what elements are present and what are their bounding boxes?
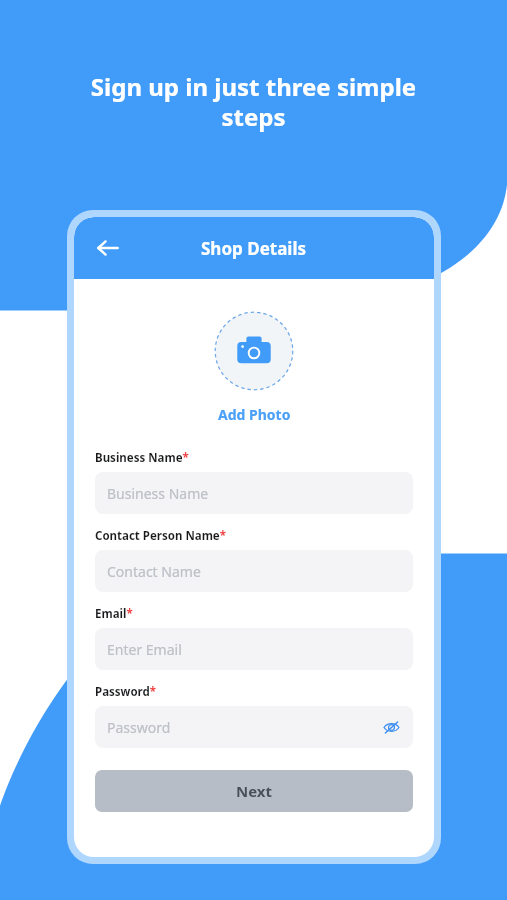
staticText: Password [107, 718, 171, 737]
button[interactable]: Back [88, 228, 128, 268]
staticText: Contact Person Name* [95, 528, 226, 544]
staticText: Next [236, 781, 273, 801]
staticText: Password* [95, 684, 157, 700]
button[interactable]: Next [95, 770, 413, 812]
staticText: Sign up in just three simple steps [40, 70, 467, 133]
button[interactable]: Business Name [95, 472, 413, 514]
button[interactable]: Password [95, 706, 413, 748]
staticText: Business Name [107, 484, 209, 503]
button[interactable]: Contact Name [95, 550, 413, 592]
staticText: Shop Details [201, 237, 307, 260]
staticText: Add Photo [218, 405, 291, 424]
staticText: Business Name* [95, 450, 189, 466]
button[interactable]: Show password [377, 713, 405, 741]
staticText: Email* [95, 606, 133, 622]
button[interactable]: Enter Email [95, 628, 413, 670]
button[interactable]: Add Photo [214, 311, 294, 391]
staticText: Contact Name [107, 562, 201, 581]
staticText: Enter Email [107, 640, 182, 659]
